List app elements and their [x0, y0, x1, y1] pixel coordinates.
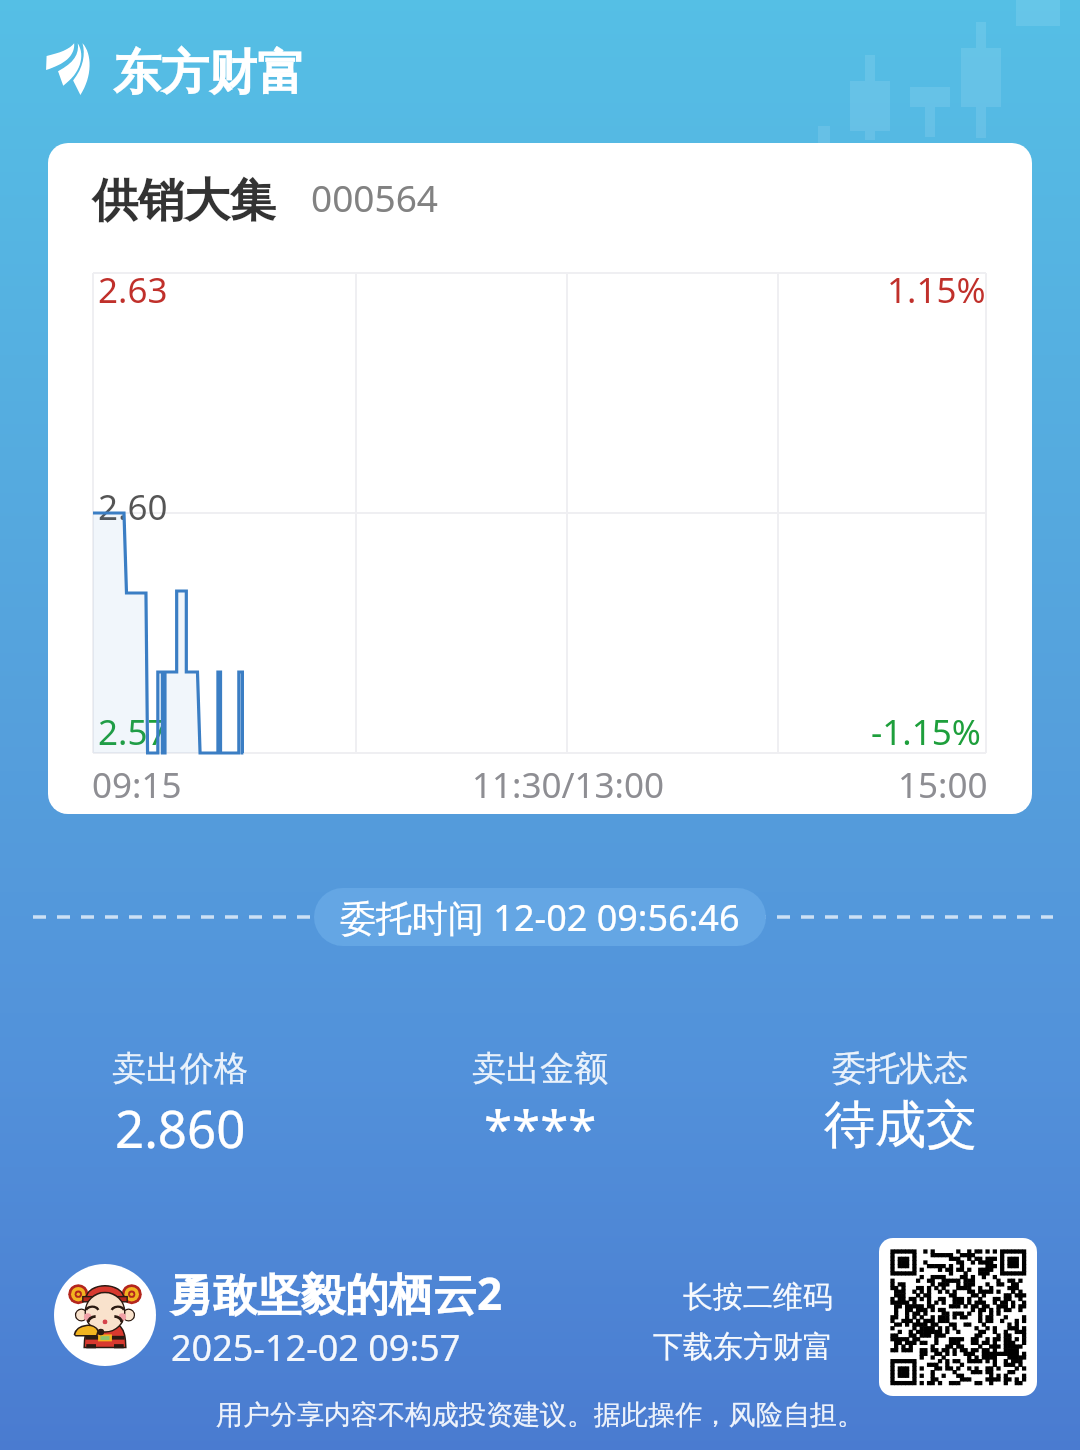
staticText: 待成交 [824, 1093, 977, 1157]
staticText: 2.60 [98, 483, 168, 531]
staticText: 2.57 [98, 708, 168, 756]
staticText: 东方财富 [113, 43, 305, 101]
button[interactable]: 长按二维码 [620, 1278, 833, 1366]
staticText: 长按二维码 [683, 1278, 833, 1316]
button[interactable]: 东方财富 logo [44, 41, 300, 99]
button[interactable]: 用户头像 [54, 1264, 156, 1366]
button[interactable]: 勇敢坚毅的栖云2 [169, 1263, 509, 1372]
staticText: 11:30/13:00 [472, 761, 664, 809]
staticText: **** [484, 1093, 597, 1162]
staticText: 用户分享内容不构成投资建议。据此操作，风险自担。 [0, 1398, 1080, 1432]
button[interactable]: 委托时间 12-02 09:56:46 [314, 888, 766, 946]
staticText: 下载东方财富 [653, 1328, 833, 1366]
staticText: -1.15% [871, 708, 981, 756]
staticText: 卖出金额 [472, 1047, 608, 1090]
staticText: 2.860 [115, 1093, 246, 1162]
staticText: 委托时间 12-02 09:56:46 [340, 893, 740, 942]
staticText: 000564 [311, 172, 438, 222]
button[interactable]: 卖出金额 [360, 1047, 720, 1162]
button[interactable]: 委托状态 [720, 1047, 1080, 1157]
button[interactable]: 供销大集 [48, 143, 1032, 814]
staticText: 1.15% [887, 266, 986, 314]
button[interactable]: 二维码 [879, 1238, 1037, 1396]
staticText: 供销大集 [92, 172, 276, 230]
staticText: 2025-12-02 09:57 [171, 1323, 461, 1372]
staticText: 卖出价格 [112, 1047, 248, 1090]
button[interactable]: 卖出价格 [0, 1047, 360, 1162]
staticText: 2.63 [98, 266, 168, 314]
staticText: 15:00 [898, 761, 988, 809]
staticText: 勇敢坚毅的栖云2 [169, 1263, 503, 1323]
other: 东方财富 logo [44, 41, 96, 99]
staticText: 委托状态 [832, 1047, 968, 1090]
staticText: 09:15 [92, 761, 182, 809]
